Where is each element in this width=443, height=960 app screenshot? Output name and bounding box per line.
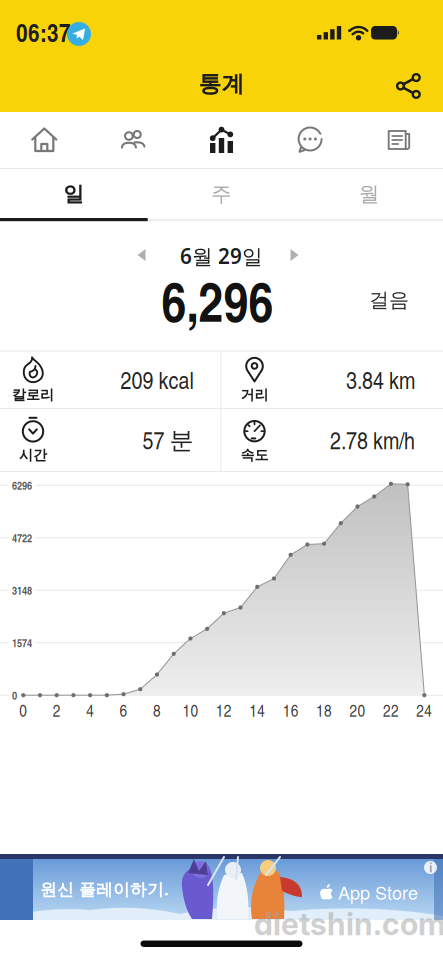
staticText: 0 xyxy=(19,699,27,721)
staticText: 속도 xyxy=(240,446,268,464)
button[interactable]: 공유 xyxy=(387,66,431,106)
staticText: 18 xyxy=(316,699,332,721)
staticText: 월 xyxy=(359,181,380,207)
button[interactable]: 다음 날짜 xyxy=(278,238,310,272)
button[interactable]: 친구 xyxy=(89,112,177,168)
staticText: 22 xyxy=(383,699,399,721)
staticText: 06:37 xyxy=(16,14,71,50)
staticText: App Store xyxy=(338,879,418,905)
staticText: 209 kcal xyxy=(120,363,193,396)
staticText: 걸음 xyxy=(369,287,409,313)
staticText: 6296 xyxy=(12,477,32,493)
staticText: 3148 xyxy=(12,582,32,598)
staticText: 3.84 km xyxy=(346,363,415,396)
staticText: 4 xyxy=(86,699,94,721)
staticText: i xyxy=(429,859,432,875)
staticText: 2 xyxy=(53,699,61,721)
staticText: dietshin.com xyxy=(254,905,443,942)
staticText: 2.78 km/h xyxy=(330,423,415,456)
staticText: 6,296 xyxy=(161,261,273,339)
staticText: 57 분 xyxy=(142,423,193,456)
staticText: 24 xyxy=(416,699,432,721)
staticText: 6월 29일 xyxy=(180,242,263,270)
staticText: 거리 xyxy=(240,386,268,403)
staticText: 0 xyxy=(12,687,17,703)
button[interactable]: 뉴스 xyxy=(354,112,443,168)
staticText: 시간 xyxy=(19,446,47,464)
staticText: 1574 xyxy=(12,635,32,651)
staticText: 8 xyxy=(153,699,161,721)
staticText: 4722 xyxy=(12,530,32,546)
staticText: 주 xyxy=(211,181,232,207)
staticText: 14 xyxy=(249,699,265,721)
button[interactable]: 홈 xyxy=(0,112,89,168)
button[interactable]: 통계 xyxy=(177,112,266,168)
staticText: 20 xyxy=(349,699,365,721)
staticText: 원신 플레이하기. xyxy=(40,878,169,900)
staticText: 16 xyxy=(283,699,299,721)
staticText: 10 xyxy=(182,699,198,721)
button[interactable]: 일 xyxy=(0,169,148,219)
staticText: 칼로리 xyxy=(12,386,54,403)
staticText: 통계 xyxy=(198,70,244,98)
button[interactable]: 월 xyxy=(295,169,443,219)
button[interactable]: 원신 플레이하기. xyxy=(0,854,443,920)
button[interactable]: 이전 날짜 xyxy=(126,238,158,272)
button[interactable]: 주 xyxy=(148,169,295,219)
staticText: 12 xyxy=(216,699,232,721)
staticText: 6 xyxy=(120,699,128,721)
button[interactable]: 커뮤니티 xyxy=(266,112,354,168)
staticText: 일 xyxy=(63,181,84,207)
